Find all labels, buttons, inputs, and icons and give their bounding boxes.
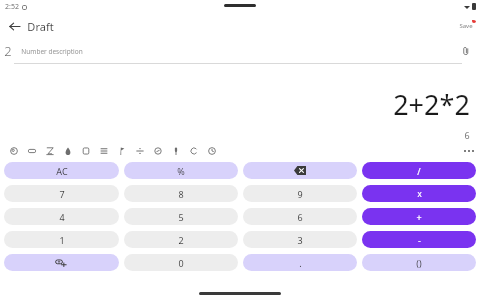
button[interactable]: List	[95, 143, 113, 159]
button[interactable]: 8	[124, 185, 238, 202]
button[interactable]: Divide	[131, 143, 149, 159]
staticText: 2:52	[5, 2, 19, 12]
button[interactable]: 3	[243, 231, 357, 248]
staticText: 9	[297, 188, 303, 200]
button[interactable]: 2	[124, 231, 238, 248]
staticText: 8	[178, 188, 184, 200]
button[interactable]: Highlight	[23, 143, 41, 159]
button[interactable]: 7	[4, 185, 119, 202]
staticText: 5	[178, 211, 184, 223]
staticText: 4	[59, 211, 65, 223]
button[interactable]: Save	[455, 20, 477, 32]
staticText: 6	[464, 129, 470, 141]
button[interactable]: 6	[243, 208, 357, 225]
staticText: AC	[56, 165, 68, 177]
staticText: .	[299, 257, 302, 269]
staticText: 1	[59, 234, 65, 246]
button[interactable]: /	[362, 162, 476, 179]
button[interactable]: Back	[2, 14, 26, 38]
staticText: /	[417, 165, 421, 177]
button[interactable]: Pin	[167, 143, 185, 159]
button[interactable]: Style	[5, 143, 23, 159]
button[interactable]: +	[362, 208, 476, 225]
staticText: ()	[416, 257, 422, 269]
staticText: 2	[178, 234, 184, 246]
staticText: 7	[59, 188, 65, 200]
button[interactable]: Clear format	[41, 143, 59, 159]
button[interactable]: AC	[4, 162, 119, 179]
button[interactable]: Bold	[113, 143, 131, 159]
staticText: 0	[178, 257, 184, 269]
button[interactable]: %	[124, 162, 238, 179]
button[interactable]: 4	[4, 208, 119, 225]
button[interactable]: 0	[124, 254, 238, 271]
staticText: x	[417, 188, 422, 199]
button[interactable]: More options	[462, 144, 476, 158]
button[interactable]: ()	[362, 254, 476, 271]
button[interactable]: History	[203, 143, 221, 159]
staticText: Save	[459, 22, 473, 30]
button[interactable]: 1	[4, 231, 119, 248]
button[interactable]: -	[362, 231, 476, 248]
staticText: Draft	[27, 19, 54, 34]
button[interactable]: Ink	[59, 143, 77, 159]
button[interactable]: Square	[77, 143, 95, 159]
button[interactable]: Undo	[185, 143, 203, 159]
staticText: 6	[297, 211, 303, 223]
button[interactable]: Add link	[4, 254, 119, 271]
staticText: 2+2*2	[393, 86, 470, 123]
button[interactable]: Backspace	[243, 162, 357, 179]
staticText: %	[177, 165, 185, 177]
staticText: -	[418, 234, 421, 246]
staticText: +	[416, 211, 422, 223]
button[interactable]: x	[362, 185, 476, 202]
button[interactable]: Number description	[21, 47, 458, 56]
button[interactable]: .	[243, 254, 357, 271]
button[interactable]: 9	[243, 185, 357, 202]
button[interactable]: Tag	[149, 143, 167, 159]
staticText: Number description	[21, 47, 83, 56]
staticText: 3	[297, 234, 303, 246]
button[interactable]: Attach	[458, 43, 474, 59]
button[interactable]: 5	[124, 208, 238, 225]
staticText: 2	[4, 42, 12, 60]
